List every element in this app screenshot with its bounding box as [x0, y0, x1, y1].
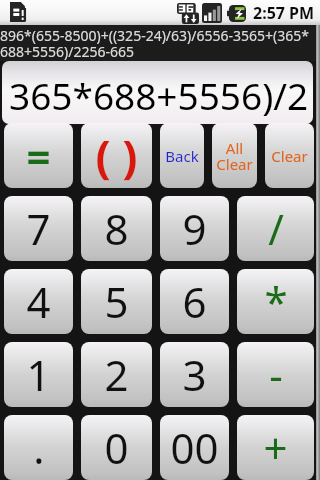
button[interactable]: =	[4, 123, 73, 188]
button[interactable]: 1	[4, 342, 73, 407]
button[interactable]: 3	[160, 342, 229, 407]
staticText: 3	[182, 346, 207, 403]
staticText: 9	[182, 200, 207, 257]
button[interactable]: 2	[81, 342, 152, 407]
button[interactable]: Clear	[265, 123, 314, 188]
staticText: 5	[104, 273, 129, 330]
button[interactable]: -	[237, 342, 314, 407]
other: SIM card alert	[10, 2, 25, 22]
staticText: 1	[26, 346, 51, 403]
staticText: ( )	[95, 125, 138, 186]
staticText: 896*(655-8500)+((325-24)/63)/6556-3565+(…	[0, 26, 310, 61]
staticText: 2	[104, 346, 129, 403]
staticText: 4	[26, 273, 51, 330]
staticText: Clear	[271, 146, 308, 166]
staticText: 7	[26, 200, 51, 257]
button[interactable]: Back	[160, 123, 204, 188]
staticText: 8	[104, 200, 129, 257]
staticText: 6	[182, 273, 207, 330]
staticText: *	[264, 273, 288, 330]
button[interactable]: 6	[160, 269, 229, 334]
button[interactable]: *	[237, 269, 314, 334]
button[interactable]: +	[237, 415, 314, 480]
staticText: 365*688+5556)/2	[9, 70, 309, 120]
staticText: =	[26, 127, 51, 184]
button[interactable]: 365*688+5556)/2	[2, 61, 313, 124]
staticText: 0	[104, 419, 129, 476]
staticText: -	[269, 346, 283, 403]
staticText: 00	[170, 419, 219, 476]
button[interactable]: 7	[4, 196, 73, 261]
button[interactable]: 9	[160, 196, 229, 261]
staticText: +	[263, 419, 288, 476]
button[interactable]: 8	[81, 196, 152, 261]
button[interactable]: /	[237, 196, 314, 261]
staticText: All Clear	[216, 138, 253, 174]
button[interactable]: 4	[4, 269, 73, 334]
staticText: .	[33, 419, 45, 476]
button[interactable]: All Clear	[212, 123, 257, 188]
staticText: Back	[165, 146, 199, 166]
button[interactable]: 0	[81, 415, 152, 480]
button[interactable]: 00	[160, 415, 229, 480]
button[interactable]: 5	[81, 269, 152, 334]
button[interactable]: ( )	[81, 123, 152, 188]
button[interactable]: .	[4, 415, 73, 480]
staticText: 2:57 PM	[253, 2, 315, 24]
staticText: /	[268, 200, 284, 257]
